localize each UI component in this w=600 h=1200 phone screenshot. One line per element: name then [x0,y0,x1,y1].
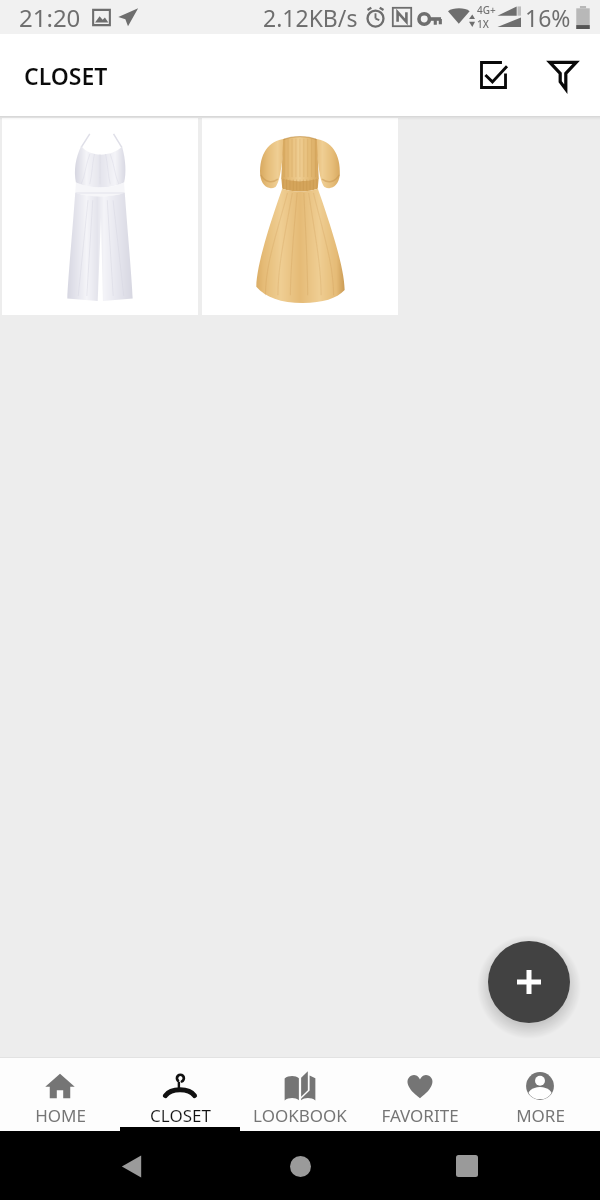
button[interactable] [2,118,198,315]
button[interactable]: Filter [535,47,591,103]
button[interactable]: HOME [0,1058,120,1131]
button[interactable] [202,118,398,315]
button[interactable]: FAVORITE [360,1058,480,1131]
staticText: 21:20 [19,1,81,34]
staticText: 2.12KB/s [263,2,358,33]
button[interactable]: Recents [443,1142,491,1190]
button[interactable]: Add item [488,941,570,1023]
staticText: 16% [525,2,571,33]
staticText: CLOSET [150,1104,211,1127]
button[interactable]: CLOSET [120,1058,240,1131]
button[interactable]: Home [276,1142,324,1190]
button[interactable]: LOOKBOOK [240,1058,360,1131]
staticText: LOOKBOOK [253,1104,347,1127]
staticText: 4G+ [477,3,496,17]
staticText: CLOSET [24,60,108,91]
staticText: FAVORITE [381,1104,459,1127]
staticText: MORE [516,1104,565,1127]
button[interactable]: Back [107,1142,155,1190]
staticText: HOME [35,1104,86,1127]
staticText: 1X [477,17,489,31]
button[interactable]: Select all [465,47,521,103]
button[interactable]: MORE [480,1058,600,1131]
